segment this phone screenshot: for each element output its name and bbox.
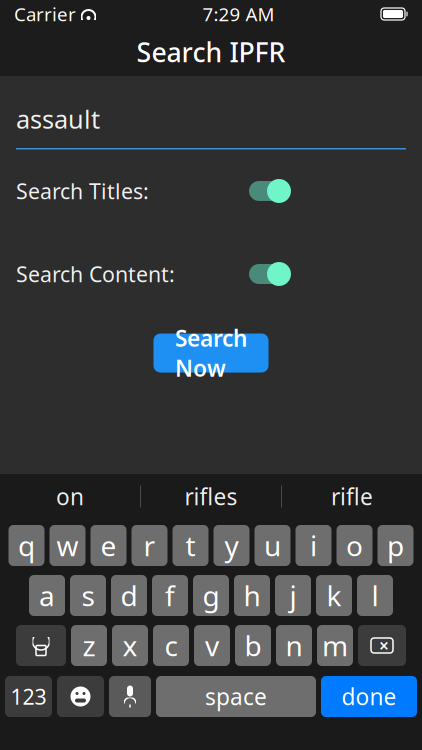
staticText: rifles — [184, 481, 237, 511]
staticText: assault — [16, 102, 100, 136]
button[interactable]: b — [235, 625, 271, 666]
staticText: Search Content: — [16, 260, 175, 288]
button[interactable]: j — [275, 575, 311, 616]
staticText: on — [56, 481, 84, 511]
button[interactable]: q — [8, 525, 44, 566]
staticText: o — [346, 527, 363, 564]
staticText: Search IPFR — [136, 34, 285, 70]
staticText: d — [120, 577, 137, 614]
staticText: m — [322, 627, 348, 664]
button[interactable]: Search Now — [153, 333, 268, 372]
button[interactable]: p — [377, 525, 413, 566]
staticText: 7:29 AM — [202, 2, 274, 26]
staticText: e — [100, 527, 116, 564]
staticText: s — [81, 577, 94, 614]
button[interactable]: Emoji — [57, 676, 104, 717]
button[interactable]: f — [152, 575, 188, 616]
staticText: v — [205, 627, 219, 664]
button[interactable]: t — [172, 525, 208, 566]
button[interactable]: 123 — [5, 676, 52, 717]
staticText: h — [243, 577, 260, 614]
button[interactable]: x — [112, 625, 148, 666]
staticText: Carrier — [14, 2, 76, 26]
staticText: z — [82, 627, 95, 664]
button[interactable]: s — [70, 575, 106, 616]
button[interactable]: space — [156, 676, 316, 717]
staticText: f — [165, 577, 175, 614]
staticText: done — [341, 681, 396, 711]
staticText: c — [164, 627, 177, 664]
staticText: 123 — [10, 682, 46, 711]
staticText: l — [371, 577, 378, 614]
staticText: j — [289, 577, 296, 614]
button[interactable]: i — [295, 525, 331, 566]
staticText: b — [244, 627, 261, 664]
staticText: t — [185, 527, 195, 564]
staticText: p — [387, 527, 404, 564]
button[interactable]: n — [276, 625, 312, 666]
staticText: w — [56, 527, 78, 564]
staticText: y — [224, 527, 238, 564]
button[interactable]: h — [234, 575, 270, 616]
staticText: Search Titles: — [16, 177, 149, 205]
staticText: u — [264, 527, 281, 564]
button[interactable]: d — [111, 575, 147, 616]
staticText: × — [379, 634, 389, 657]
button[interactable]: z — [71, 625, 107, 666]
button[interactable]: w — [49, 525, 85, 566]
staticText: rifle — [331, 481, 373, 511]
button[interactable]: r — [131, 525, 167, 566]
button[interactable]: u — [254, 525, 290, 566]
staticText: space — [205, 681, 267, 711]
staticText: r — [143, 527, 155, 564]
button[interactable]: rifle — [282, 474, 422, 519]
button[interactable]: y — [213, 525, 249, 566]
button[interactable]: c — [153, 625, 189, 666]
staticText: q — [18, 527, 35, 564]
staticText: x — [122, 627, 137, 664]
button[interactable]: done — [321, 676, 417, 717]
staticText: Search Now — [175, 323, 247, 383]
button[interactable]: a — [29, 575, 65, 616]
button[interactable]: on — [0, 474, 140, 519]
button[interactable]: k — [316, 575, 352, 616]
button[interactable]: g — [193, 575, 229, 616]
staticText: n — [285, 627, 302, 664]
button[interactable]: m — [317, 625, 353, 666]
button[interactable]: Shift — [16, 625, 66, 666]
button[interactable]: Search Titles: — [247, 178, 289, 204]
button[interactable]: Dictation — [109, 676, 151, 717]
button[interactable]: o — [336, 525, 372, 566]
button[interactable]: l — [357, 575, 393, 616]
staticText: g — [202, 577, 219, 614]
button[interactable]: v — [194, 625, 230, 666]
button[interactable]: Search Content: — [247, 261, 289, 287]
button[interactable]: Delete — [358, 625, 406, 666]
button[interactable]: rifles — [141, 474, 281, 519]
staticText: a — [39, 577, 55, 614]
button[interactable]: e — [90, 525, 126, 566]
staticText: k — [326, 577, 341, 614]
staticText: i — [310, 527, 317, 564]
